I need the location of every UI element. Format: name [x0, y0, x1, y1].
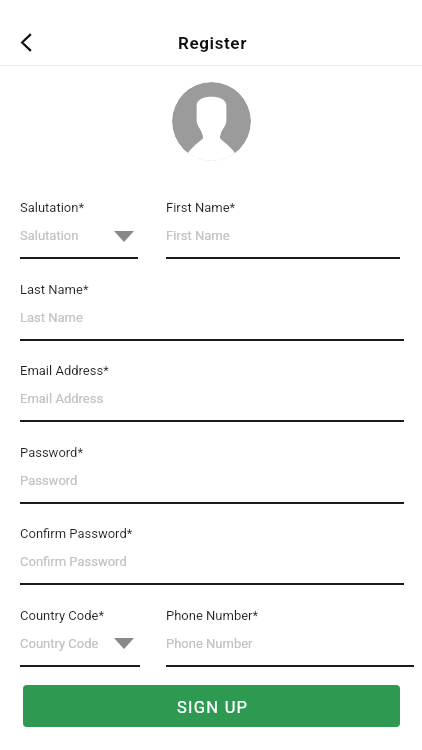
staticText: Confirm Password [20, 554, 127, 569]
staticText: Country Code* [20, 608, 105, 623]
staticText: Confirm Password* [20, 526, 133, 541]
staticText: Email Address [20, 391, 104, 406]
staticText: Password* [20, 445, 84, 460]
button[interactable]: SIGN UP [23, 685, 400, 727]
staticText: Last Name [20, 310, 83, 325]
staticText: SIGN UP [177, 698, 249, 717]
staticText: Password [20, 473, 78, 488]
staticText: Salutation* [20, 200, 85, 215]
staticText: Phone Number [166, 636, 253, 651]
staticText: First Name* [166, 200, 236, 215]
staticText: Last Name* [20, 282, 89, 297]
button[interactable]: Back [5, 21, 48, 64]
staticText: Salutation [20, 228, 79, 243]
staticText: Phone Number* [166, 608, 259, 623]
staticText: Register [178, 33, 247, 53]
staticText: First Name [166, 228, 230, 243]
staticText: Country Code [20, 636, 99, 651]
staticText: Email Address* [20, 363, 109, 378]
